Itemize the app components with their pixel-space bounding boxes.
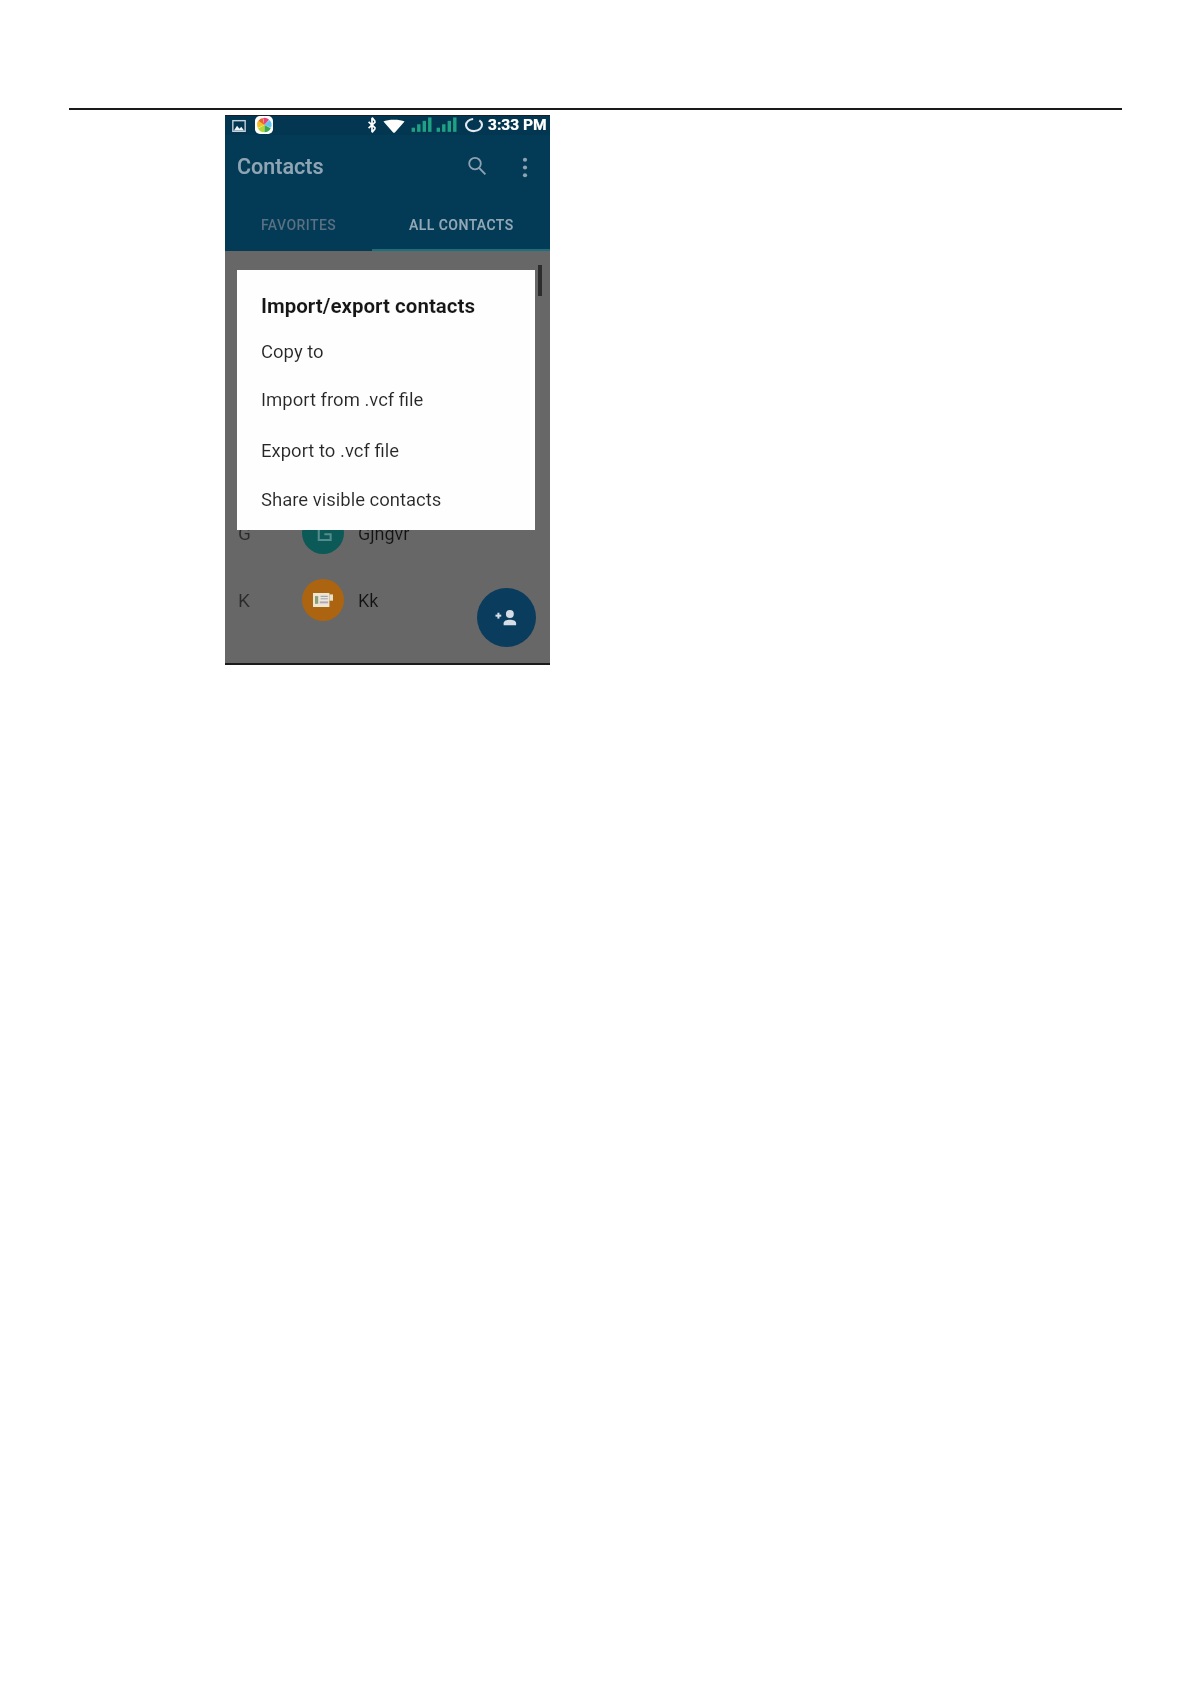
staticText: 3:33 PM [488, 116, 547, 134]
button[interactable]: FAVORITES [225, 198, 372, 251]
button[interactable]: Add contact [477, 588, 536, 647]
button[interactable]: Import/export contacts [237, 287, 535, 325]
button[interactable]: Search [458, 147, 496, 185]
button[interactable]: Share visible contacts [237, 481, 535, 519]
staticText: Contacts [237, 154, 324, 179]
button[interactable]: ALL CONTACTS [372, 198, 550, 251]
staticText: Export to .vcf file [261, 440, 399, 462]
staticText: G [238, 522, 251, 544]
button[interactable]: G [225, 507, 550, 559]
staticText: Copy to [261, 341, 324, 363]
staticText: Kk [358, 590, 379, 611]
button[interactable]: Copy to [237, 333, 535, 371]
button[interactable]: K [225, 574, 550, 626]
button[interactable]: More options [509, 151, 541, 183]
staticText: Import/export contacts [261, 294, 475, 318]
button[interactable]: Import from .vcf file [237, 381, 535, 419]
staticText: Import from .vcf file [261, 389, 424, 411]
staticText: K [238, 589, 250, 611]
staticText: ALL CONTACTS [409, 217, 514, 233]
staticText: Gjngvr [358, 523, 410, 544]
staticText: FAVORITES [261, 217, 337, 233]
staticText: Share visible contacts [261, 489, 442, 511]
button[interactable]: Export to .vcf file [237, 432, 535, 470]
